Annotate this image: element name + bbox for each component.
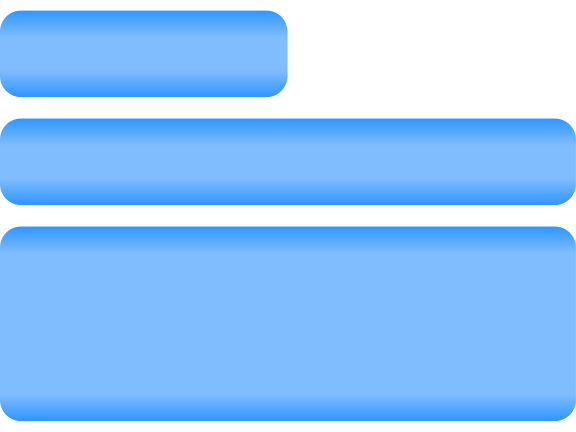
button[interactable]: Card 3: [0, 227, 576, 421]
button[interactable]: Card 2: [0, 119, 576, 205]
button[interactable]: Card 1: [0, 11, 287, 97]
